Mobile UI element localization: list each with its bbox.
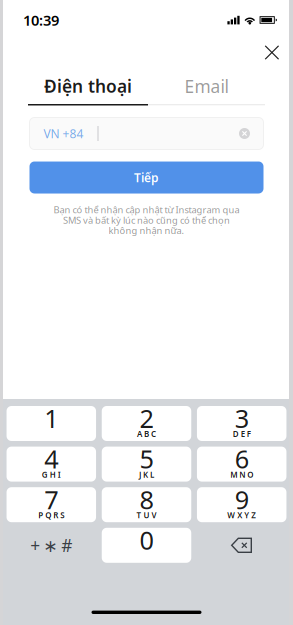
button[interactable]: 5 <box>102 447 191 482</box>
staticText: không nhận nữa. <box>108 224 184 237</box>
button[interactable]: Tiếp <box>29 161 263 193</box>
staticText: 8 <box>139 482 153 516</box>
staticText: 1 <box>44 401 58 435</box>
staticText: M N O <box>230 469 253 480</box>
button[interactable]: 1 <box>7 406 96 441</box>
staticText: 6 <box>235 442 249 475</box>
staticText: Bạn có thể nhận cập nhật từ Instagram qu… <box>53 203 239 216</box>
button[interactable]: 4 <box>7 447 96 482</box>
staticText: D E F <box>233 429 251 439</box>
staticText: G H I <box>42 469 61 480</box>
staticText: Email <box>184 75 228 98</box>
staticText: J K L <box>139 469 154 480</box>
button[interactable]: Delete <box>197 528 286 563</box>
button[interactable]: Clear text <box>233 122 255 144</box>
staticText: Điện thoại <box>44 74 132 97</box>
button[interactable]: 6 <box>197 447 286 482</box>
staticText: T U V <box>136 510 156 520</box>
staticText: P Q R S <box>38 510 64 520</box>
staticText: Tiếp <box>134 169 159 185</box>
staticText: 7 <box>44 482 58 516</box>
button[interactable]: Điện thoại <box>28 76 148 105</box>
button[interactable]: Close <box>258 38 286 67</box>
staticText: W X Y Z <box>227 510 256 520</box>
staticText: 5 <box>139 442 153 475</box>
button[interactable]: 9 <box>197 487 286 522</box>
button[interactable]: 7 <box>7 487 96 522</box>
staticText: 9 <box>235 482 249 516</box>
staticText: + ∗ # <box>30 534 72 557</box>
staticText: 0 <box>139 523 153 557</box>
button[interactable]: 2 <box>102 406 191 441</box>
button[interactable]: Email <box>148 76 265 105</box>
button[interactable]: 3 <box>197 406 286 441</box>
staticText: A B C <box>137 429 156 439</box>
staticText: SMS và bất kỳ lúc nào cũng có thể chọn <box>63 214 230 226</box>
staticText: 2 <box>139 401 153 435</box>
staticText: VN +84 <box>43 125 83 141</box>
button[interactable]: 0 <box>102 528 191 563</box>
staticText: 10:39 <box>23 10 59 30</box>
button[interactable]: 8 <box>102 487 191 522</box>
staticText: 3 <box>235 401 249 435</box>
button[interactable]: Symbols <box>7 528 96 563</box>
staticText: 4 <box>44 442 58 475</box>
